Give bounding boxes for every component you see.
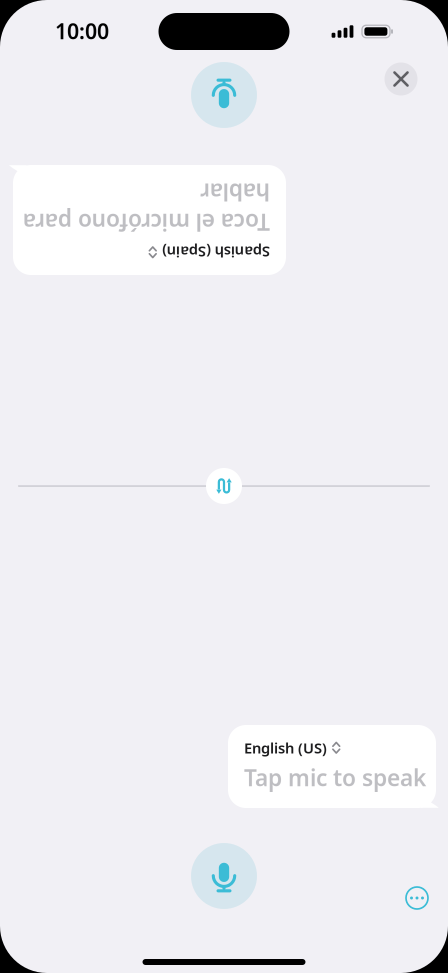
button[interactable]: More options [397, 878, 437, 918]
staticText: Toca el micrófono para hablar [29, 202, 276, 263]
button[interactable]: English (US) [244, 738, 340, 757]
button[interactable]: Close [384, 62, 417, 95]
staticText: 10:00 [55, 17, 109, 45]
staticText: English (US) [244, 738, 327, 757]
button[interactable]: Microphone, English [191, 843, 257, 909]
button[interactable]: Microphone, Spanish [191, 62, 257, 128]
staticText: Tap mic to speak [244, 762, 426, 793]
button[interactable]: Swap languages [206, 468, 242, 504]
